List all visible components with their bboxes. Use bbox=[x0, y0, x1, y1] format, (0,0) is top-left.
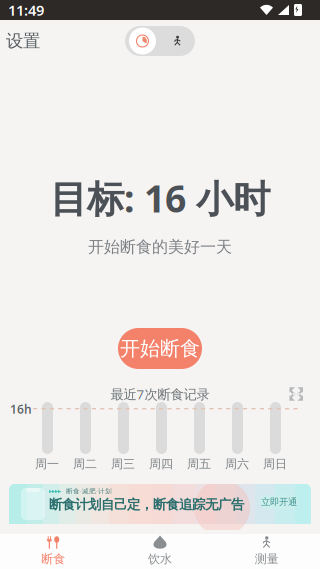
staticText: 周四 bbox=[149, 457, 173, 471]
staticText: 周二 bbox=[73, 457, 97, 471]
staticText: 断食计划自己定，断食追踪无广告 bbox=[49, 496, 244, 513]
staticText: 断食·减肥·计划 bbox=[66, 487, 112, 495]
button[interactable]: 断食 bbox=[0, 534, 107, 569]
button[interactable]: 设置 bbox=[6, 29, 40, 53]
button[interactable]: 测量 bbox=[213, 534, 320, 569]
staticText: ▸▸▸▸ bbox=[49, 487, 61, 495]
staticText: 开始断食的美好一天 bbox=[88, 237, 232, 257]
staticText: 目标: 16 小时 bbox=[50, 173, 270, 223]
staticText: 最近7次断食记录 bbox=[110, 385, 209, 403]
staticText: 断食 bbox=[41, 552, 65, 566]
button[interactable]: 模式切换 bbox=[125, 26, 195, 56]
button[interactable]: 饮水 bbox=[107, 534, 213, 569]
staticText: 周日 bbox=[263, 457, 287, 471]
staticText: 周一 bbox=[35, 457, 59, 471]
staticText: 周五 bbox=[187, 457, 211, 471]
staticText: 16h bbox=[10, 401, 32, 417]
staticText: 饮水 bbox=[148, 552, 172, 566]
staticText: 设置 bbox=[6, 30, 40, 52]
staticText: 测量 bbox=[255, 552, 279, 566]
staticText: 开始断食 bbox=[120, 336, 200, 361]
button[interactable]: ▸▸▸▸ bbox=[0, 484, 320, 530]
staticText: 周六 bbox=[225, 457, 249, 471]
button[interactable]: 展开记录 bbox=[286, 384, 306, 404]
button[interactable]: 开始断食 bbox=[118, 328, 202, 369]
staticText: 立即开通 bbox=[261, 496, 297, 508]
staticText: 11:49 bbox=[8, 0, 44, 20]
staticText: 周三 bbox=[111, 457, 135, 471]
